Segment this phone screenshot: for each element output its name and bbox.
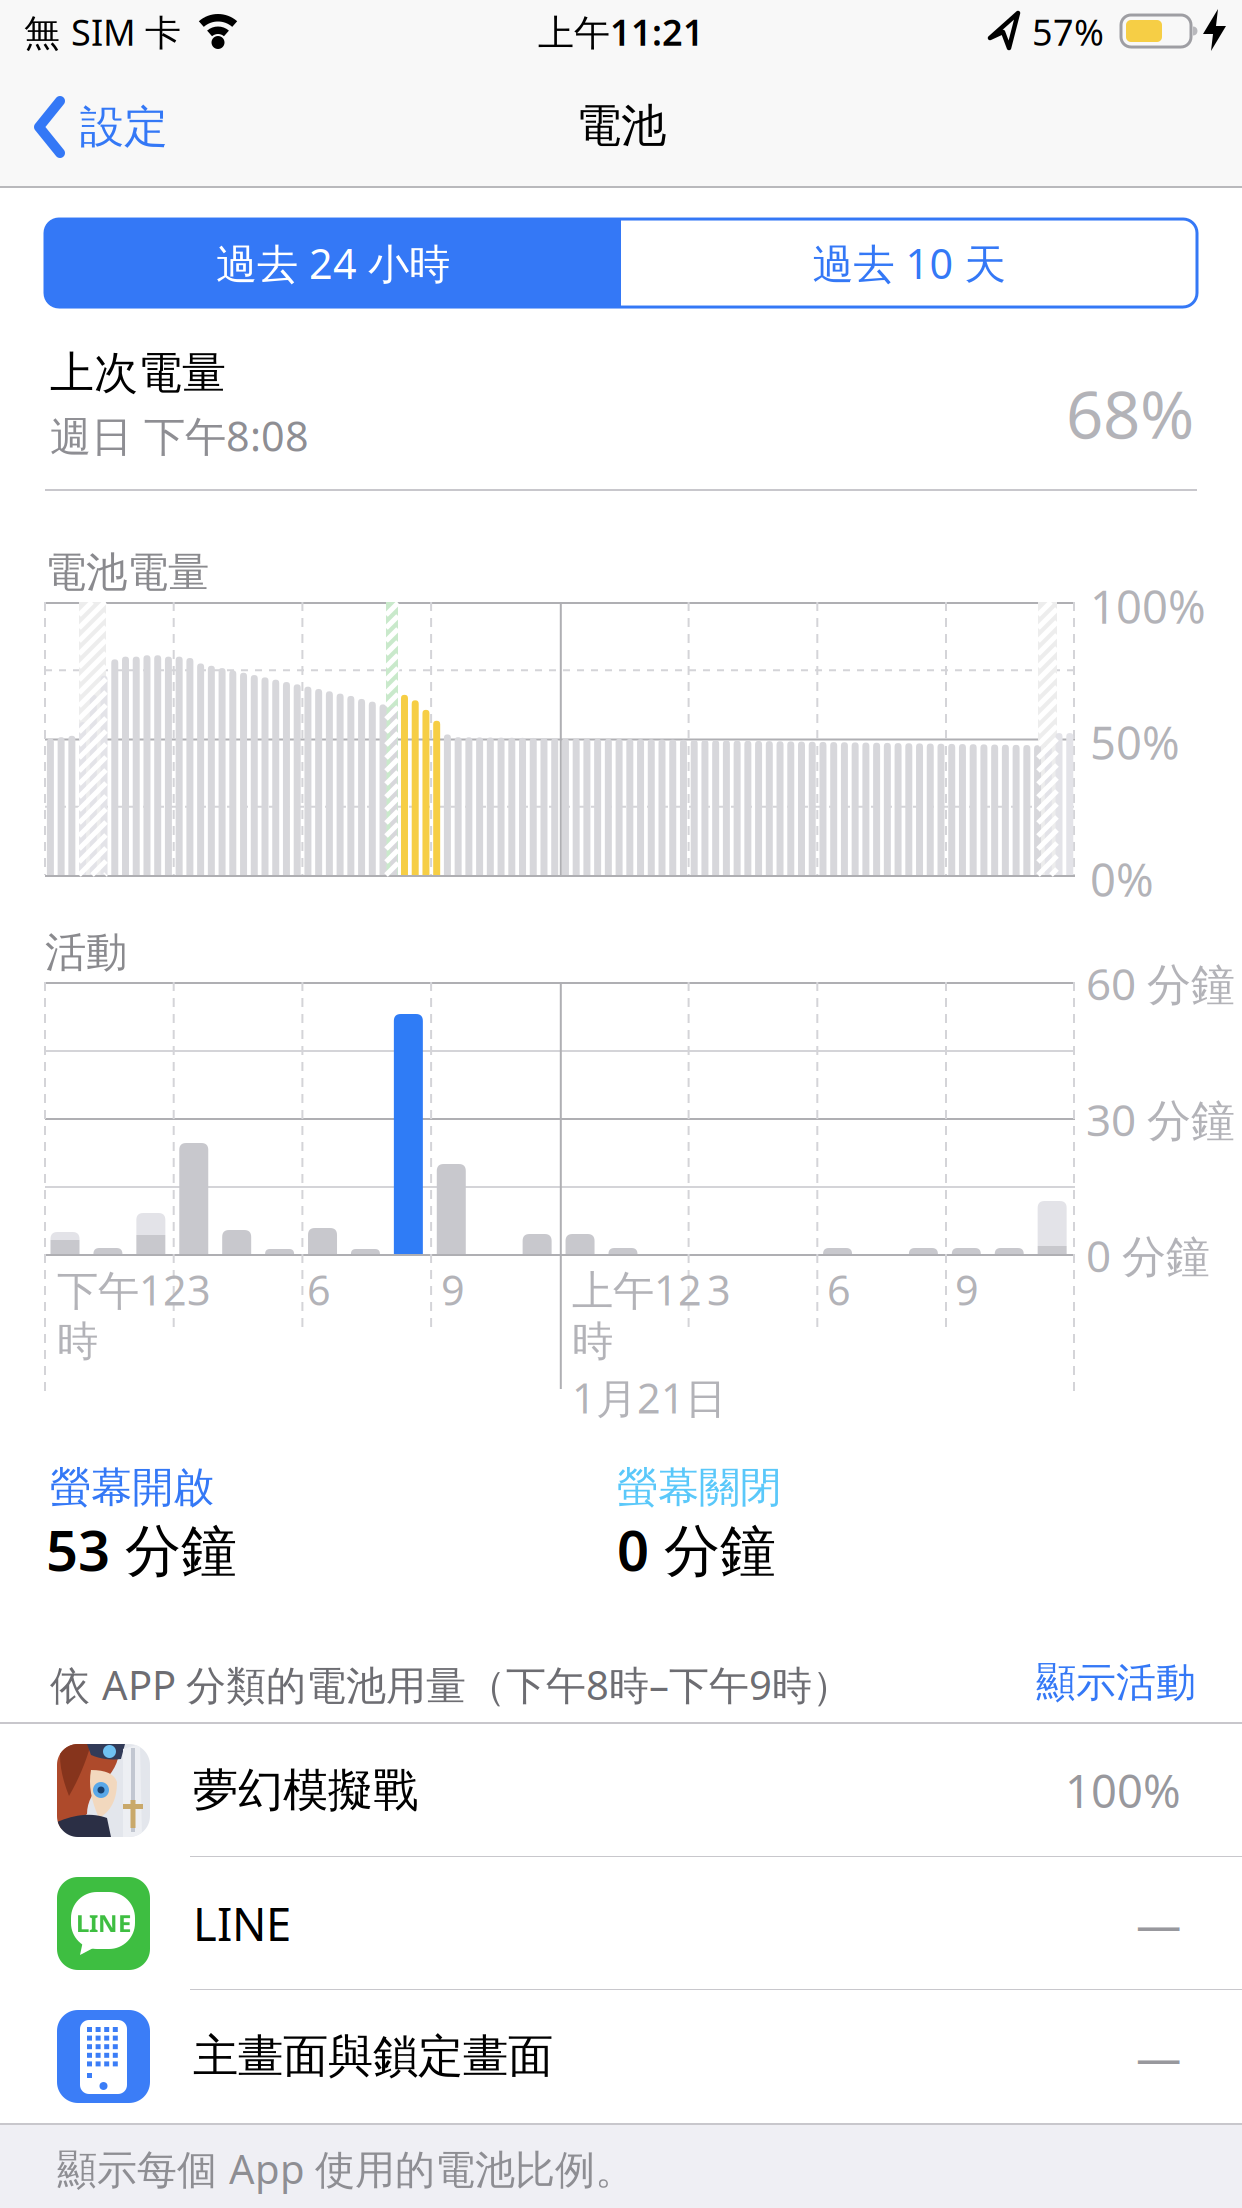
staticText: 上午11:21 xyxy=(538,8,704,56)
button[interactable]: 設定 xyxy=(34,96,168,158)
staticText: 螢幕開啟 xyxy=(50,1462,214,1513)
staticText: — xyxy=(1136,2026,1181,2087)
staticText: 57% xyxy=(1032,8,1104,56)
staticText: LINE xyxy=(76,1907,131,1939)
staticText: 3 xyxy=(707,1262,731,1317)
button[interactable]: 顯示活動 xyxy=(1036,1658,1196,1707)
staticText: 30 分鐘 xyxy=(1086,1090,1235,1148)
staticText: 過去 24 小時 xyxy=(216,236,450,290)
staticText: 50% xyxy=(1090,712,1180,772)
staticText: 6 xyxy=(827,1262,851,1317)
staticText: 無 SIM 卡 xyxy=(24,8,181,56)
staticText: 週日 下午8:08 xyxy=(50,408,309,463)
button[interactable]: 夢幻模擬戰 xyxy=(0,1724,1242,1857)
staticText: 夢幻模擬戰 xyxy=(193,1763,418,1818)
staticText: 顯示每個 App 使用的電池比例。 xyxy=(57,2142,635,2195)
staticText: 電池 xyxy=(576,98,666,154)
staticText: 上次電量 xyxy=(50,346,226,400)
staticText: 0 分鐘 xyxy=(617,1512,776,1586)
staticText: 0% xyxy=(1090,849,1154,909)
staticText: 9 xyxy=(441,1262,465,1317)
staticText: 上午12 xyxy=(572,1262,702,1317)
button[interactable]: LINE xyxy=(0,1857,1242,1990)
staticText: 9 xyxy=(955,1262,979,1317)
staticText: 活動 xyxy=(45,927,127,978)
staticText: LINE xyxy=(193,1893,291,1954)
button[interactable]: 主畫面與鎖定畫面 xyxy=(0,1990,1242,2123)
staticText: 時 xyxy=(57,1316,98,1367)
staticText: 顯示活動 xyxy=(1036,1658,1196,1707)
staticText: 過去 10 天 xyxy=(812,236,1005,290)
staticText: 主畫面與鎖定畫面 xyxy=(193,2029,553,2084)
staticText: 100% xyxy=(1065,1760,1181,1821)
button[interactable]: 過去 24 小時 xyxy=(45,219,621,307)
staticText: 60 分鐘 xyxy=(1086,954,1235,1012)
staticText: 53 分鐘 xyxy=(46,1512,237,1586)
staticText: 6 xyxy=(307,1262,331,1317)
button[interactable]: 過去 10 天 xyxy=(621,219,1197,307)
staticText: 依 APP 分類的電池用量（下午8時–下午9時） xyxy=(50,1658,852,1711)
staticText: 0 分鐘 xyxy=(1086,1226,1210,1284)
staticText: 電池電量 xyxy=(45,547,209,598)
staticText: 1月21日 xyxy=(572,1370,726,1425)
staticText: 下午12 xyxy=(57,1262,187,1317)
staticText: 設定 xyxy=(80,100,168,154)
staticText: — xyxy=(1136,1893,1181,1954)
staticText: 3 xyxy=(187,1262,211,1317)
staticText: 時 xyxy=(572,1316,613,1367)
staticText: 100% xyxy=(1090,576,1206,636)
staticText: 68% xyxy=(1066,370,1194,457)
staticText: 螢幕關閉 xyxy=(617,1462,781,1513)
